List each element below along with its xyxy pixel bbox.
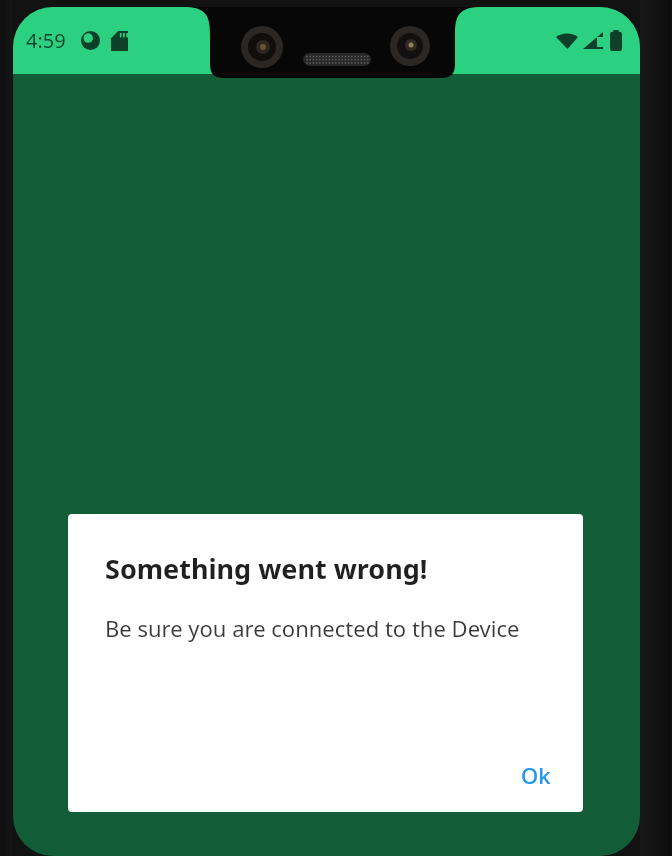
- button[interactable]: Ok: [505, 750, 567, 800]
- staticText: Something went wrong!: [105, 550, 428, 587]
- staticText: Be sure you are connected to the Device: [105, 613, 520, 643]
- staticText: Ok: [521, 760, 551, 790]
- staticText: 4:59: [26, 27, 66, 54]
